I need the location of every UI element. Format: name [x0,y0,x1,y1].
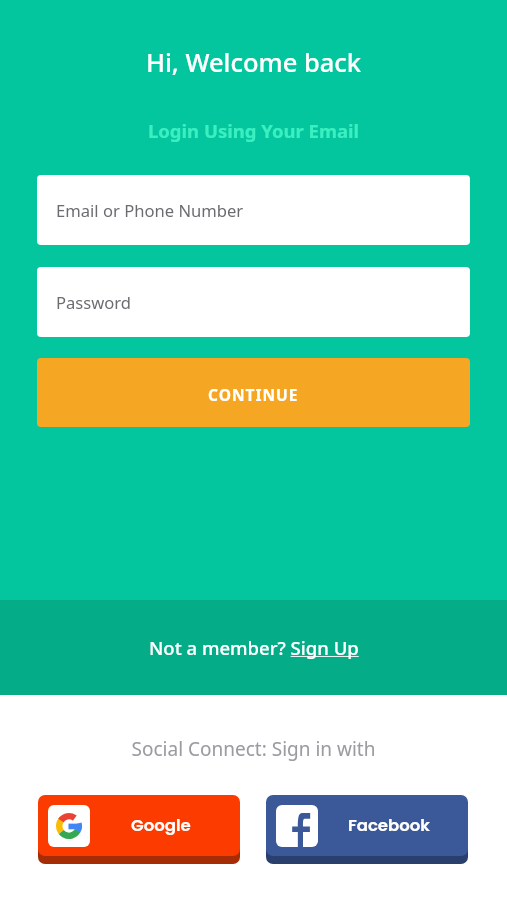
staticText: Hi, Welcome back [0,45,507,80]
button[interactable]: Email or Phone Number [37,175,470,245]
staticText: Not a member? Sign Up [149,635,359,660]
staticText: Password [56,291,132,314]
staticText: Login Using Your Email [0,118,507,143]
button[interactable]: Sign in with Google [38,795,240,856]
staticText: Google [131,814,191,837]
button[interactable]: CONTINUE [37,358,470,427]
staticText: Email or Phone Number [56,199,244,222]
button[interactable]: Password [37,267,470,337]
button[interactable]: Sign in with Facebook [266,795,468,856]
button[interactable]: Not a member? Sign Up [139,627,369,668]
staticText: CONTINUE [208,384,299,405]
staticText: Social Connect: Sign in with [0,736,507,762]
other: Sign in with Facebook [276,805,318,847]
other: Sign in with Google [48,805,90,847]
staticText: Facebook [348,814,430,837]
